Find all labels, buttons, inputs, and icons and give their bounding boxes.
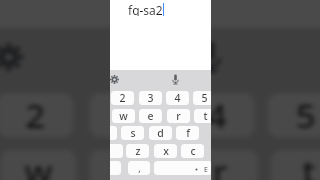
- button[interactable]: 5: [268, 93, 320, 137]
- staticText: ,: [138, 162, 141, 174]
- staticText: z: [135, 144, 141, 158]
- button[interactable]: [110, 161, 121, 175]
- staticText: r: [212, 150, 228, 180]
- staticText: e: [116, 150, 139, 180]
- button[interactable]: t: [194, 109, 211, 123]
- staticText: fq-sa2: [128, 2, 163, 16]
- staticText: 3: [116, 93, 139, 137]
- button[interactable]: e: [90, 150, 165, 180]
- staticText: w: [119, 109, 128, 123]
- staticText: x: [163, 144, 169, 158]
- button[interactable]: w: [0, 150, 76, 180]
- button[interactable]: Voice input: [171, 74, 180, 85]
- button[interactable]: r: [167, 109, 190, 123]
- button[interactable]: 3: [139, 91, 162, 105]
- staticText: 4: [205, 93, 228, 137]
- button[interactable]: c: [181, 144, 204, 158]
- button[interactable]: [110, 144, 123, 158]
- button[interactable]: 2: [111, 91, 134, 105]
- button[interactable]: [154, 161, 211, 175]
- button[interactable]: z: [126, 144, 149, 158]
- button[interactable]: 5: [193, 91, 211, 105]
- button[interactable]: a: [110, 126, 117, 140]
- staticText: c: [190, 144, 196, 158]
- button[interactable]: s: [121, 126, 144, 140]
- button[interactable]: 4: [179, 93, 255, 137]
- staticText: s: [130, 126, 136, 140]
- staticText: 5: [294, 93, 317, 137]
- button[interactable]: 2: [0, 93, 73, 137]
- staticText: 4: [174, 91, 181, 105]
- staticText: 2: [24, 93, 47, 137]
- staticText: E: [204, 165, 208, 175]
- staticText: 2: [119, 91, 126, 105]
- button[interactable]: Keyboard settings: [110, 75, 119, 84]
- button[interactable]: Voice input: [195, 40, 225, 74]
- button[interactable]: 4: [166, 91, 189, 105]
- button[interactable]: ,: [128, 161, 150, 175]
- button[interactable]: r: [182, 150, 258, 180]
- staticText: t: [301, 150, 317, 180]
- button[interactable]: Keyboard settings: [0, 43, 24, 71]
- button[interactable]: e: [139, 109, 162, 123]
- button[interactable]: 3: [90, 93, 165, 137]
- button[interactable]: f: [176, 126, 199, 140]
- staticText: r: [176, 109, 181, 123]
- staticText: d: [157, 126, 164, 140]
- button[interactable]: d: [149, 126, 172, 140]
- button[interactable]: x: [154, 144, 177, 158]
- staticText: e: [147, 109, 154, 123]
- staticText: t: [203, 109, 208, 123]
- staticText: 3: [147, 91, 154, 105]
- button[interactable]: w: [112, 109, 135, 123]
- staticText: f: [186, 126, 190, 140]
- staticText: w: [24, 150, 53, 180]
- staticText: 5: [201, 91, 208, 105]
- button[interactable]: t: [271, 150, 320, 180]
